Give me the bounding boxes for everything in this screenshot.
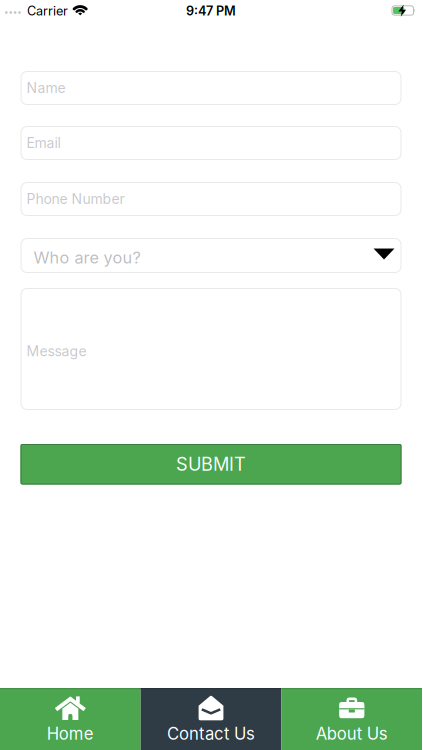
button[interactable]: Who are you?	[20, 238, 401, 273]
button[interactable]: Message	[20, 288, 401, 410]
button[interactable]: Email	[20, 126, 401, 160]
staticText: About Us	[316, 723, 388, 744]
staticText: Phone Number	[26, 190, 124, 207]
staticText: 9:47 PM	[186, 3, 236, 19]
staticText: Contact Us	[167, 723, 255, 744]
button[interactable]: Home	[0, 688, 141, 750]
button[interactable]: SUBMIT	[20, 444, 401, 484]
button[interactable]: Contact Us	[141, 688, 281, 750]
button[interactable]: About Us	[281, 688, 422, 750]
staticText: SUBMIT	[176, 453, 246, 475]
staticText: Message	[26, 343, 86, 360]
staticText: Home	[47, 723, 94, 744]
staticText: Email	[26, 134, 60, 151]
button[interactable]: Phone Number	[20, 182, 401, 216]
staticText: Carrier	[27, 3, 68, 19]
button[interactable]: Name	[20, 71, 401, 105]
staticText: Who are you?	[33, 248, 140, 268]
staticText: Name	[26, 79, 65, 96]
